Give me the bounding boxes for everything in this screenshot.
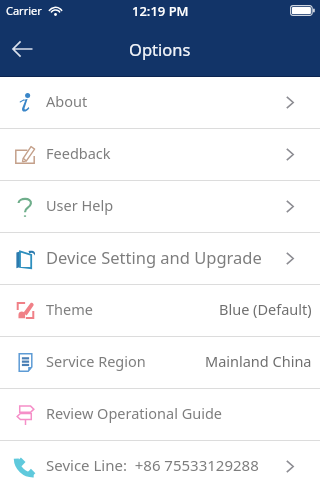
button[interactable]: Back: [0, 27, 44, 71]
staticText: 12:19 PM: [132, 2, 189, 20]
button[interactable]: Feedback: [0, 129, 320, 180]
staticText: About: [46, 91, 88, 111]
button[interactable]: About: [0, 77, 320, 128]
staticText: User Help: [46, 195, 114, 215]
staticText: Theme: [46, 299, 93, 319]
button[interactable]: Sevice Line: +86 75533129288: [0, 441, 320, 480]
staticText: Service Region: [46, 351, 146, 371]
button[interactable]: Theme: [0, 285, 320, 336]
button[interactable]: Review Operational Guide: [0, 389, 320, 440]
staticText: Sevice Line: +86 75533129288: [46, 455, 259, 475]
staticText: Review Operational Guide: [46, 403, 223, 423]
button[interactable]: Service Region: [0, 337, 320, 388]
button[interactable]: User Help: [0, 181, 320, 232]
staticText: Device Setting and Upgrade: [46, 246, 262, 268]
staticText: Carrier: [6, 3, 42, 18]
staticText: Mainland China: [205, 351, 312, 371]
staticText: Feedback: [46, 143, 111, 163]
staticText: Options: [129, 38, 191, 60]
button[interactable]: Device Setting and Upgrade: [0, 233, 320, 284]
staticText: Blue (Default): [219, 299, 312, 319]
